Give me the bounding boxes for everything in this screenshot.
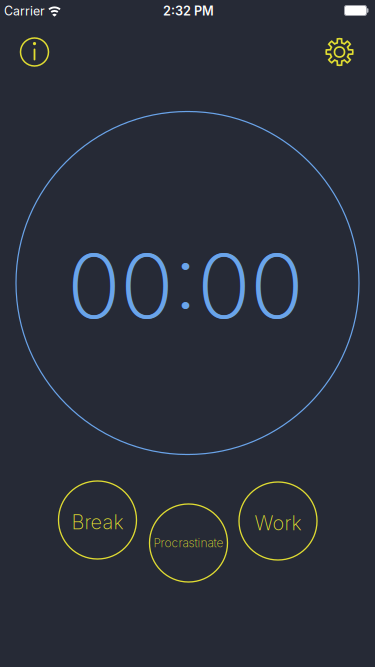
button[interactable]: Settings [324, 37, 354, 67]
staticText: Carrier [4, 3, 45, 18]
staticText: 2:32 PM [163, 3, 214, 19]
button[interactable]: Break [58, 481, 136, 559]
staticText: 00:00 [67, 233, 303, 339]
staticText: 00:00 [68, 233, 304, 339]
button[interactable]: Info [20, 38, 48, 66]
button[interactable]: Procrastinate [149, 504, 227, 582]
button[interactable]: Work [239, 482, 317, 560]
staticText: Work [254, 511, 301, 535]
staticText: Break [71, 510, 123, 534]
staticText: Procrastinate [153, 536, 223, 550]
